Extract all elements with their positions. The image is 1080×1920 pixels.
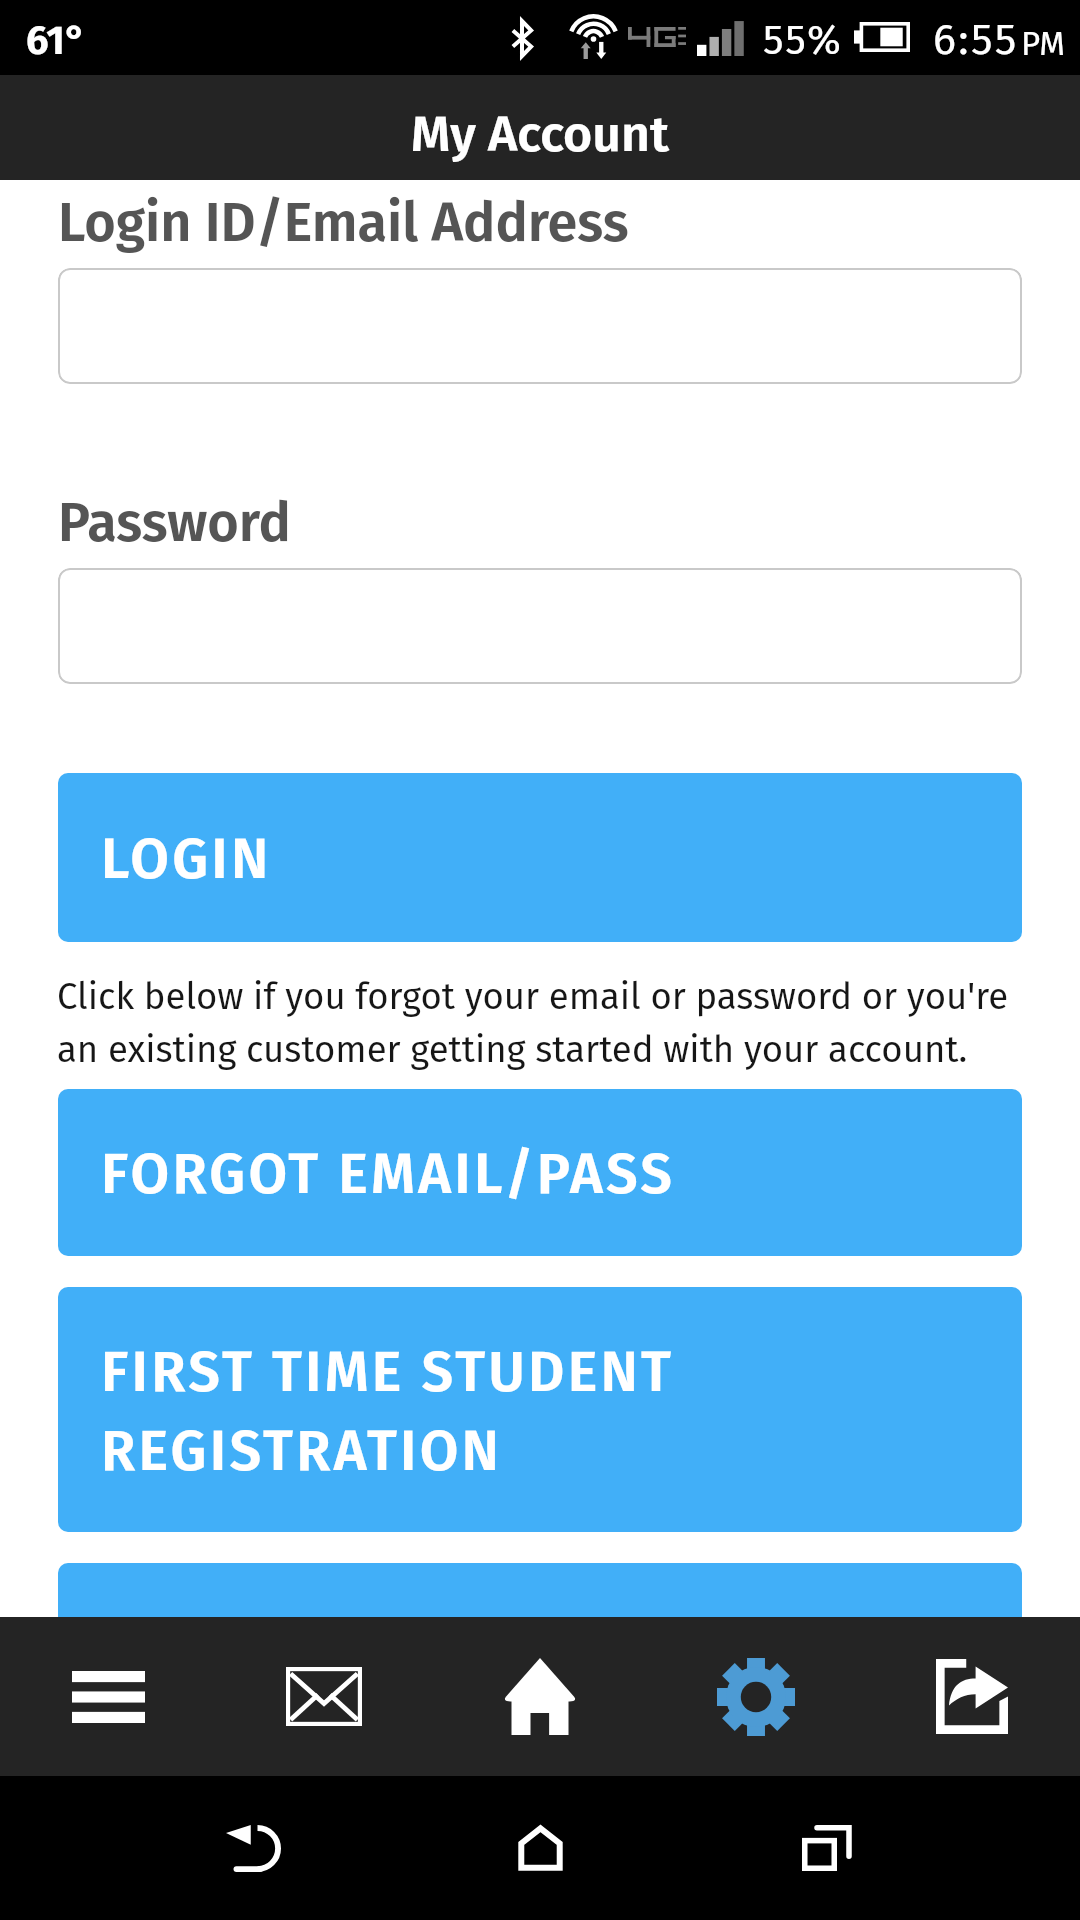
staticText: My Account <box>411 104 669 164</box>
button[interactable]: Recent apps <box>772 1800 882 1896</box>
button[interactable]: More options <box>58 1563 1022 1617</box>
staticText: PM <box>1021 24 1065 64</box>
button[interactable]: FORGOT EMAIL/PASS <box>58 1089 1022 1256</box>
staticText: 55% <box>763 16 843 65</box>
staticText: 61° <box>26 17 86 65</box>
button[interactable]: Home <box>432 1617 648 1776</box>
button[interactable] <box>58 268 1022 384</box>
staticText: Login ID/Email Address <box>58 191 629 256</box>
button[interactable] <box>58 568 1022 684</box>
button[interactable]: FIRST TIME STUDENT REGISTRATION <box>58 1287 1022 1532</box>
button[interactable]: Settings <box>648 1617 864 1776</box>
staticText: Password <box>58 491 291 556</box>
button[interactable]: Back <box>198 1800 308 1896</box>
staticText: FIRST TIME STUDENT REGISTRATION <box>101 1339 675 1485</box>
staticText: Click below if you forgot your email or … <box>57 975 1009 1071</box>
button[interactable]: Menu <box>0 1617 216 1776</box>
button[interactable]: Mail <box>216 1617 432 1776</box>
button[interactable]: Share <box>864 1617 1080 1776</box>
staticText: 6:55 <box>933 14 1019 66</box>
staticText: LOGIN <box>101 826 272 893</box>
button[interactable]: Home <box>485 1800 595 1896</box>
staticText: FORGOT EMAIL/PASS <box>101 1141 676 1208</box>
button[interactable]: LOGIN <box>58 773 1022 942</box>
